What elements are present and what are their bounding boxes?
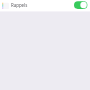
staticText: Rappels — [11, 2, 28, 8]
button[interactable]: Toggle reminders — [73, 0, 89, 11]
button[interactable]: Open lists — [0, 0, 11, 11]
